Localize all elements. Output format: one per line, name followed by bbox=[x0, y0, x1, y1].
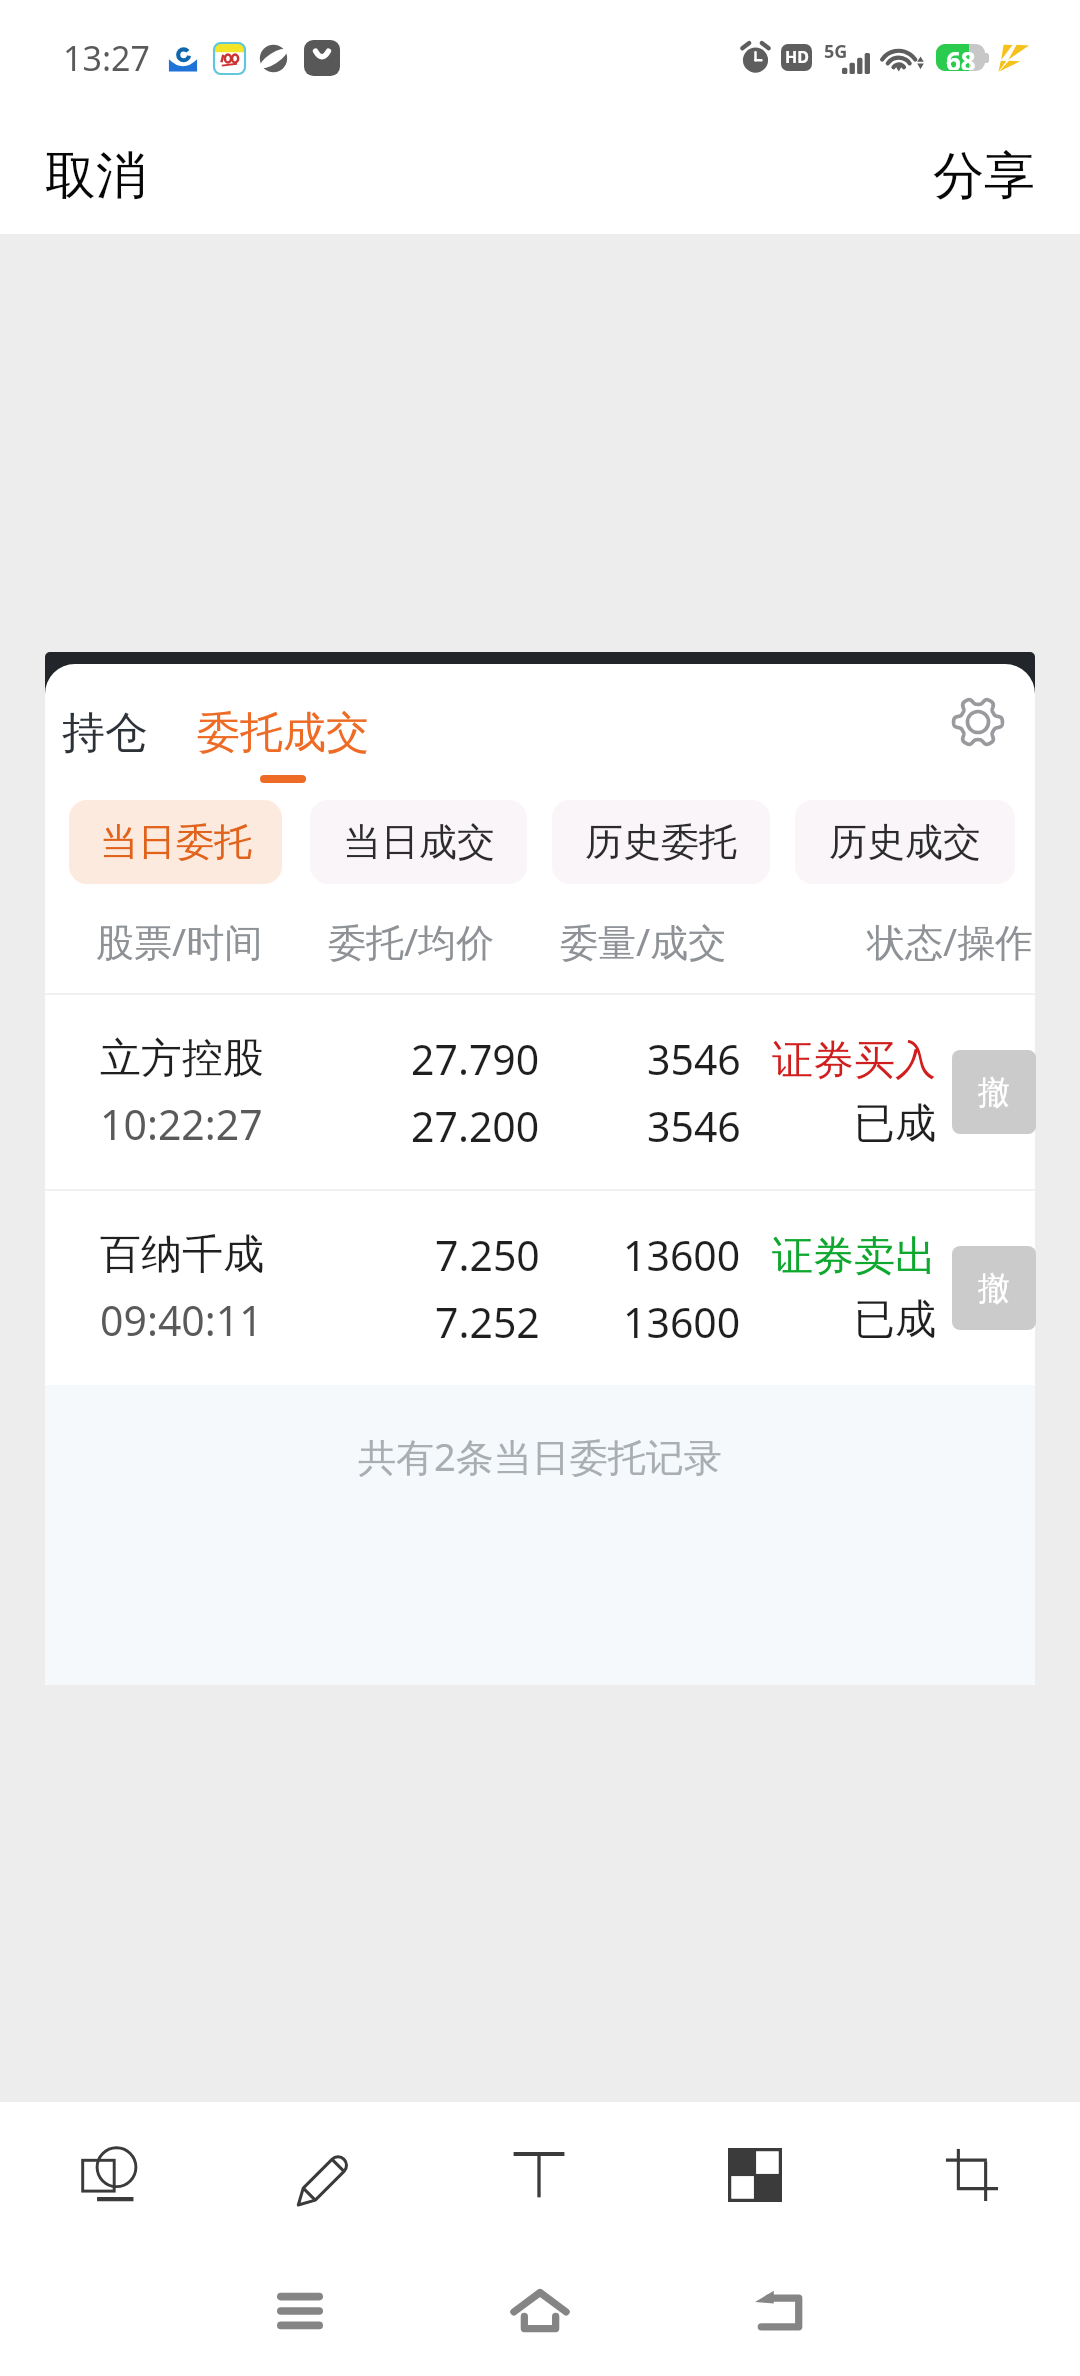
button[interactable]: Add text bbox=[467, 2110, 611, 2240]
button[interactable]: Crop bbox=[900, 2110, 1044, 2240]
staticText: 10:22:27 bbox=[100, 1096, 263, 1152]
staticText: 13600 bbox=[623, 1227, 741, 1283]
staticText: 立方控股 bbox=[100, 1033, 264, 1085]
button[interactable]: 取消 bbox=[0, 117, 192, 234]
staticText: 13:27 bbox=[63, 35, 150, 81]
button[interactable]: 撤 bbox=[952, 1050, 1036, 1134]
staticText: 7.250 bbox=[435, 1227, 540, 1283]
staticText: 共有2条当日委托记录 bbox=[358, 1430, 722, 1482]
button[interactable]: Home bbox=[480, 2251, 600, 2371]
staticText: 状态/操作 bbox=[867, 915, 1034, 967]
staticText: 5G bbox=[824, 39, 848, 64]
staticText: 历史成交 bbox=[829, 818, 981, 866]
staticText: 委托成交 bbox=[197, 706, 369, 760]
staticText: 13600 bbox=[623, 1294, 741, 1350]
staticText: 股票/时间 bbox=[96, 915, 263, 967]
button[interactable]: 持仓 bbox=[46, 694, 164, 772]
staticText: 持仓 bbox=[62, 706, 148, 760]
staticText: 当日委托 bbox=[100, 818, 252, 866]
button[interactable]: 立方控股 bbox=[45, 995, 1035, 1189]
staticText: 68 bbox=[946, 43, 976, 70]
button[interactable]: 当日成交 bbox=[310, 800, 527, 884]
staticText: 27.200 bbox=[411, 1098, 540, 1154]
button[interactable]: 历史成交 bbox=[795, 800, 1015, 884]
staticText: 历史委托 bbox=[585, 818, 737, 866]
staticText: 取消 bbox=[45, 144, 147, 208]
button[interactable]: Settings bbox=[940, 684, 1016, 760]
staticText: 7.252 bbox=[435, 1294, 540, 1350]
button[interactable]: Back bbox=[720, 2251, 840, 2371]
staticText: 分享 bbox=[933, 144, 1035, 208]
staticText: 撤 bbox=[978, 1268, 1010, 1308]
button[interactable]: 撤 bbox=[952, 1246, 1036, 1330]
button[interactable]: 当日委托 bbox=[69, 800, 282, 884]
staticText: 27.790 bbox=[411, 1031, 540, 1087]
staticText: 09:40:11 bbox=[100, 1292, 263, 1348]
staticText: 证券卖出 bbox=[772, 1231, 936, 1283]
button[interactable]: 委托成交 bbox=[182, 694, 384, 783]
staticText: 已成 bbox=[854, 1294, 936, 1346]
button[interactable]: Mosaic bbox=[683, 2110, 827, 2240]
button[interactable]: Draw bbox=[251, 2110, 395, 2240]
staticText: 证券买入 bbox=[772, 1035, 936, 1087]
button[interactable]: 百纳千成 bbox=[45, 1191, 1035, 1385]
button[interactable]: 分享 bbox=[888, 117, 1080, 234]
staticText: 当日成交 bbox=[343, 818, 495, 866]
button[interactable]: Recent apps bbox=[240, 2251, 360, 2371]
staticText: 撤 bbox=[978, 1072, 1010, 1112]
staticText: 委托/均价 bbox=[328, 915, 495, 967]
staticText: 3546 bbox=[647, 1098, 741, 1154]
button[interactable]: Shape tool bbox=[38, 2110, 182, 2240]
button[interactable]: 历史委托 bbox=[552, 800, 770, 884]
staticText: HD bbox=[785, 46, 809, 68]
staticText: 已成 bbox=[854, 1098, 936, 1150]
staticText: 委量/成交 bbox=[560, 915, 727, 967]
staticText: 3546 bbox=[647, 1031, 741, 1087]
staticText: 百纳千成 bbox=[100, 1229, 264, 1281]
